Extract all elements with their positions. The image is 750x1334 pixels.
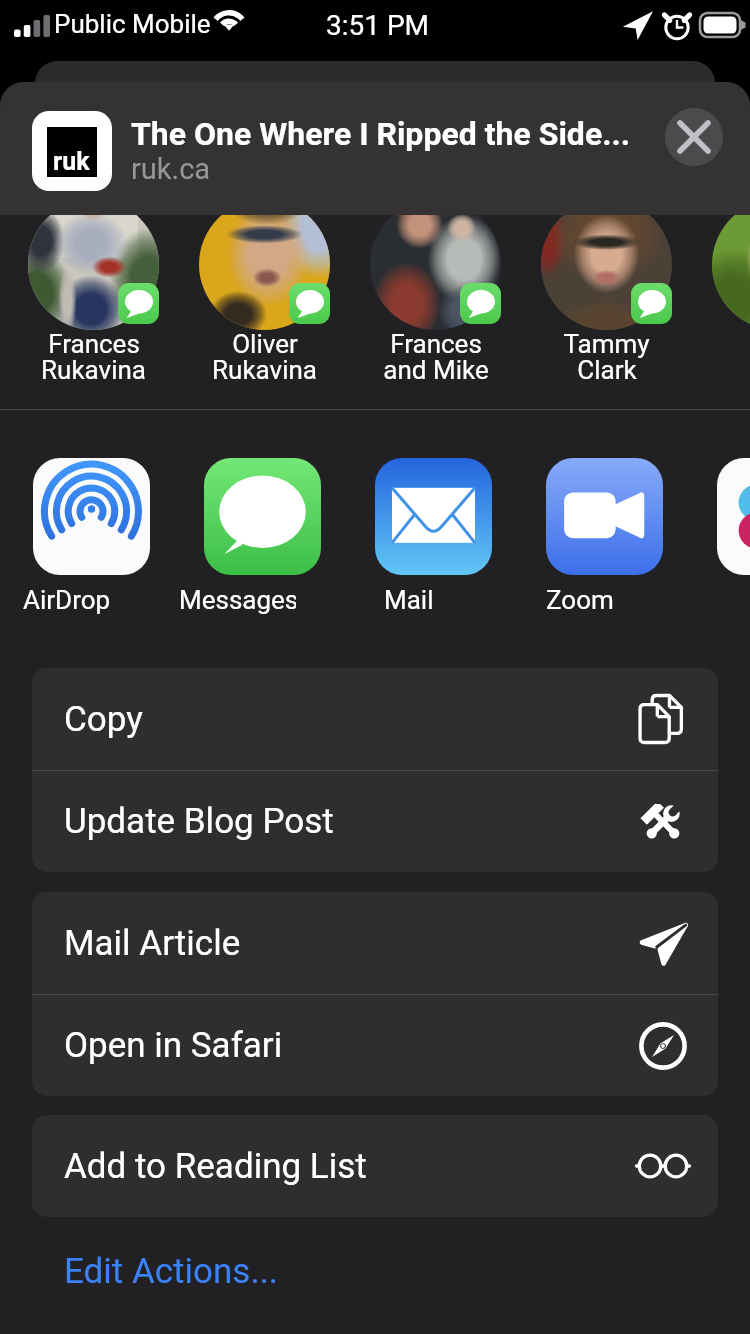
- staticText: Clark: [577, 355, 637, 385]
- button[interactable]: Mail: [375, 458, 492, 575]
- staticText: Zoom: [546, 585, 614, 615]
- button[interactable]: Flickr: [717, 458, 750, 575]
- staticText: AirDrop: [23, 585, 111, 615]
- button[interactable]: Open in Safari: [32, 995, 718, 1096]
- staticText: Update Blog Post: [64, 801, 334, 842]
- staticText: Public Mobile: [54, 9, 211, 39]
- button[interactable]: Close: [665, 108, 723, 166]
- staticText: Add to Reading List: [64, 1146, 367, 1187]
- staticText: ruk: [53, 147, 90, 176]
- button[interactable]: Messages: [204, 458, 321, 575]
- button[interactable]: Zoom: [546, 458, 663, 575]
- staticText: Mail Article: [64, 923, 241, 964]
- button[interactable]: Mail Article: [32, 892, 718, 994]
- staticText: Copy: [64, 699, 143, 740]
- staticText: 3:51 PM: [326, 9, 430, 42]
- button[interactable]: [541, 199, 672, 330]
- button[interactable]: [370, 199, 501, 330]
- button[interactable]: [712, 199, 750, 330]
- staticText: Frances: [390, 329, 482, 359]
- staticText: Rukavina: [212, 355, 317, 385]
- staticText: Frances: [48, 329, 140, 359]
- staticText: Tammy: [563, 329, 650, 359]
- button[interactable]: AirDrop: [33, 458, 150, 575]
- button[interactable]: Update Blog Post: [32, 771, 718, 872]
- staticText: Oliver: [232, 329, 298, 359]
- staticText: Edit Actions...: [64, 1251, 279, 1292]
- button[interactable]: [199, 199, 330, 330]
- button[interactable]: Copy: [32, 668, 718, 770]
- button[interactable]: Edit Actions...: [32, 1245, 311, 1298]
- staticText: ruk.ca: [131, 152, 211, 186]
- staticText: Mail: [384, 585, 434, 615]
- button[interactable]: Add to Reading List: [32, 1115, 718, 1217]
- staticText: and Mike: [383, 355, 489, 385]
- staticText: Open in Safari: [64, 1025, 283, 1066]
- button[interactable]: [28, 199, 159, 330]
- staticText: The One Where I Ripped the Side...: [131, 115, 631, 153]
- staticText: Rukavina: [41, 355, 146, 385]
- staticText: Messages: [179, 585, 296, 615]
